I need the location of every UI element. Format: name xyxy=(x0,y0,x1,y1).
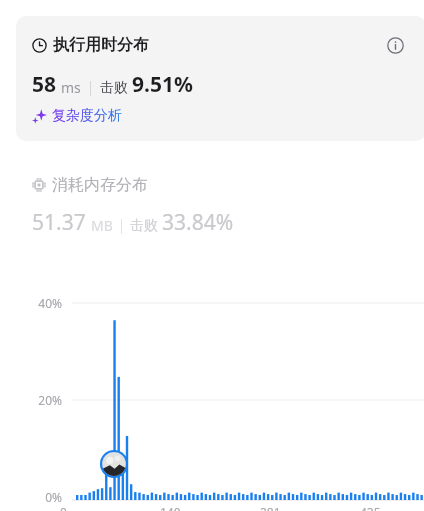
staticText: 9.51% xyxy=(132,70,193,99)
staticText: 425 xyxy=(360,504,381,511)
staticText: 0% xyxy=(45,489,62,505)
staticText: 40% xyxy=(38,295,62,311)
button[interactable]: 详情 xyxy=(382,32,408,58)
staticText: 执行用时分布 xyxy=(53,35,149,55)
staticText: 复杂度分析 xyxy=(52,107,122,125)
staticText: 51.37 xyxy=(32,208,86,237)
staticText: 20% xyxy=(38,392,62,408)
staticText: 33.84% xyxy=(162,208,234,237)
staticText: 140 xyxy=(160,504,181,511)
button[interactable]: 复杂度分析 xyxy=(32,104,122,128)
staticText: 0 xyxy=(60,504,67,511)
staticText: 击败 xyxy=(130,217,158,235)
staticText: 消耗内存分布 xyxy=(52,175,148,195)
staticText: 281 xyxy=(260,504,281,511)
staticText: MB xyxy=(91,216,113,235)
button[interactable]: 执行用时分布 xyxy=(16,16,424,141)
staticText: ms xyxy=(61,78,81,97)
staticText: 58 xyxy=(32,70,57,99)
staticText: 击败 xyxy=(100,79,128,97)
